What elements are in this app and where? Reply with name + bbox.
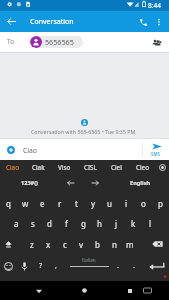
button[interactable]: 5656565: [30, 36, 83, 48]
button[interactable]: Enter: [145, 256, 169, 276]
button[interactable]: o: [135, 193, 152, 213]
staticText: CISL: [84, 163, 97, 172]
button[interactable]: m: [122, 234, 138, 254]
button[interactable]: l: [142, 213, 159, 233]
button[interactable]: Change keyboard: [138, 281, 157, 300]
staticText: w: [22, 198, 29, 209]
staticText: 8:44: [148, 1, 161, 10]
button[interactable]: .: [111, 256, 124, 276]
staticText: v: [79, 239, 84, 250]
button[interactable]: s: [24, 213, 41, 233]
button[interactable]: Add attachment: [3, 142, 19, 158]
button[interactable]: Next: [86, 176, 104, 189]
button[interactable]: x: [40, 234, 56, 254]
staticText: s: [31, 218, 35, 229]
button[interactable]: c: [57, 234, 73, 254]
staticText: x: [46, 239, 51, 250]
button[interactable]: k: [125, 213, 142, 233]
staticText: 5656565: [45, 37, 74, 47]
button[interactable]: b: [89, 234, 105, 254]
staticText: o: [141, 198, 146, 209]
button[interactable]: e: [34, 193, 51, 213]
staticText: f: [65, 218, 68, 229]
button[interactable]: p: [152, 193, 169, 213]
button[interactable]: Viso: [51, 160, 77, 174]
button[interactable]: Space: [59, 256, 119, 276]
staticText: SMS: [151, 151, 160, 157]
button[interactable]: Recent apps: [120, 281, 139, 300]
staticText: Conversation with 565-6565 • Tue 9:35 PM: [31, 128, 136, 135]
button[interactable]: r: [51, 193, 68, 213]
button[interactable]: Add people: [149, 35, 165, 51]
button[interactable]: y: [85, 193, 102, 213]
staticText: j: [115, 218, 118, 229]
button[interactable]: Back: [29, 281, 48, 300]
button[interactable]: ,: [47, 256, 64, 276]
button[interactable]: u: [101, 193, 118, 213]
button[interactable]: Ciel: [103, 160, 129, 174]
button[interactable]: h: [91, 213, 108, 233]
button[interactable]: Cleo: [129, 160, 155, 174]
button[interactable]: ?: [32, 256, 49, 276]
button[interactable]: Ciao: [0, 160, 25, 174]
button[interactable]: v: [73, 234, 89, 254]
staticText: p: [158, 198, 163, 209]
staticText: .: [117, 261, 119, 271]
button[interactable]: .: [127, 256, 140, 276]
staticText: .: [133, 261, 135, 271]
staticText: g: [81, 218, 86, 229]
button[interactable]: Previous: [62, 176, 80, 189]
button[interactable]: Backspace: [146, 234, 168, 254]
staticText: English: [130, 179, 151, 187]
button[interactable]: More options: [150, 13, 168, 31]
staticText: n: [112, 239, 117, 250]
button[interactable]: Home: [75, 281, 94, 300]
button[interactable]: Emoji: [0, 256, 17, 276]
staticText: Conversation: [30, 17, 74, 27]
button[interactable]: f: [58, 213, 75, 233]
staticText: Ciao: [23, 146, 37, 155]
staticText: Ciel: [111, 163, 122, 172]
staticText: z: [30, 239, 34, 250]
staticText: Viso: [58, 163, 71, 172]
staticText: q: [6, 198, 11, 209]
staticText: 123#(): [21, 179, 39, 187]
staticText: m: [126, 239, 134, 250]
staticText: d: [47, 218, 52, 229]
staticText: Ciao: [6, 163, 19, 172]
button[interactable]: Voice input: [16, 256, 33, 276]
button[interactable]: q: [0, 193, 17, 213]
button[interactable]: g: [75, 213, 92, 233]
staticText: l: [149, 218, 152, 229]
button[interactable]: Back: [1, 11, 21, 31]
staticText: b: [95, 239, 100, 250]
staticText: Cleo: [136, 163, 149, 172]
staticText: Italian: [82, 257, 96, 263]
staticText: r: [58, 198, 62, 209]
staticText: t: [75, 198, 78, 209]
button[interactable]: Keyboard settings: [155, 160, 169, 174]
staticText: e: [40, 198, 45, 209]
staticText: ?: [39, 261, 43, 271]
button[interactable]: n: [106, 234, 122, 254]
button[interactable]: Shift: [0, 234, 19, 254]
button[interactable]: Send SMS: [143, 138, 169, 160]
button[interactable]: a: [8, 213, 25, 233]
button[interactable]: j: [108, 213, 125, 233]
button[interactable]: d: [41, 213, 58, 233]
button[interactable]: z: [24, 234, 40, 254]
staticText: h: [97, 218, 102, 229]
button[interactable]: Ciak: [25, 160, 51, 174]
button[interactable]: English: [118, 176, 162, 189]
staticText: To: [7, 37, 15, 46]
staticText: c: [63, 239, 67, 250]
button[interactable]: w: [17, 193, 34, 213]
staticText: u: [107, 198, 112, 209]
staticText: ,: [55, 261, 57, 271]
staticText: i: [125, 198, 128, 209]
button[interactable]: CISL: [77, 160, 103, 174]
button[interactable]: t: [68, 193, 85, 213]
button[interactable]: 123#(): [10, 176, 50, 189]
button[interactable]: i: [118, 193, 135, 213]
button[interactable]: Call: [134, 13, 152, 31]
